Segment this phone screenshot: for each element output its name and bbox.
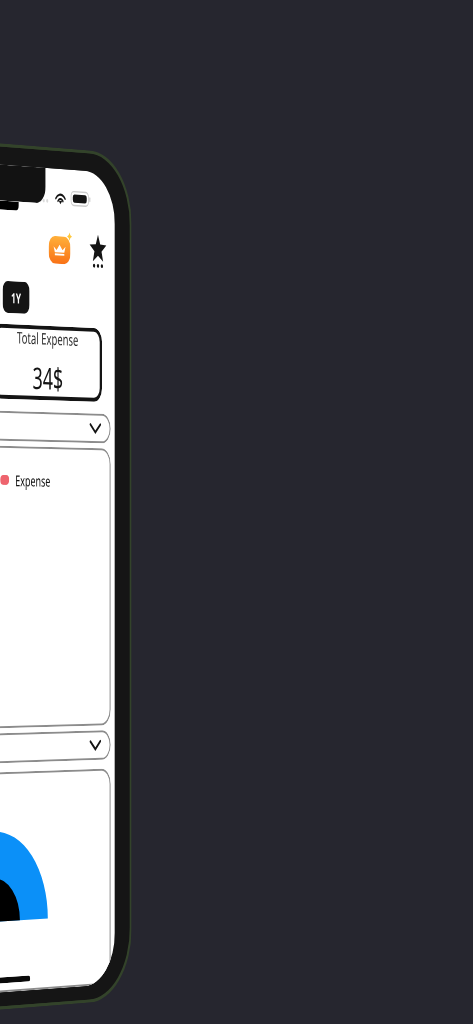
staticText: Total Expense [17,326,79,351]
button[interactable]: 1M [0,279,1,313]
button[interactable]: Categories [0,730,111,766]
staticText: 1Y [11,288,21,308]
staticText: Expense [15,470,50,491]
button[interactable]: Premium [49,235,70,264]
button[interactable]: Favourites [89,236,107,269]
button[interactable]: Monthly Report [0,408,111,444]
button[interactable]: Total Expense [0,323,102,402]
button[interactable]: 1Y [3,281,30,314]
staticText: 34$ [33,357,63,399]
